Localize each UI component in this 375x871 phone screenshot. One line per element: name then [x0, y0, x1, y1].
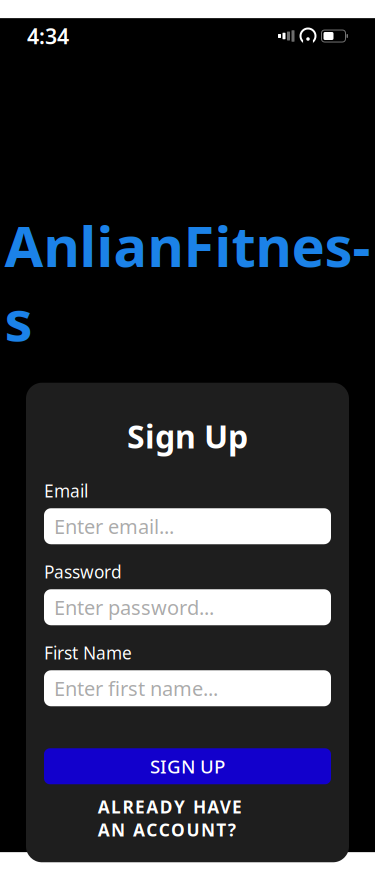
staticText: Password	[44, 560, 122, 583]
staticText: First Name	[44, 641, 132, 664]
button[interactable]: Enter first name...	[44, 670, 331, 706]
staticText: Enter first name...	[54, 675, 218, 702]
button[interactable]: SIGN UP	[44, 748, 331, 784]
staticText: Enter password...	[54, 594, 214, 621]
staticText: SIGN UP	[150, 754, 225, 779]
staticText: Email	[44, 479, 88, 502]
button[interactable]: Enter email...	[44, 508, 331, 544]
staticText: AnlianFitness	[4, 208, 370, 357]
staticText: 4:34	[27, 22, 69, 50]
button[interactable]: Enter password...	[44, 589, 331, 625]
staticText: ALREADY HAVE AN ACCOUNT?	[98, 795, 277, 841]
button[interactable]: ALREADY HAVE AN ACCOUNT?	[44, 808, 331, 828]
staticText: Sign Up	[127, 415, 248, 457]
staticText: Enter email...	[54, 513, 174, 540]
